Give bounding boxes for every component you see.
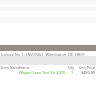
staticText: Qty	[68, 65, 74, 70]
staticText: 1	[69, 70, 75, 75]
staticText: $450.00	[78, 70, 95, 75]
staticText: Item Name	[1, 65, 20, 70]
staticText: Wagon Lane Tool Kit 2000	[19, 70, 65, 75]
staticText: Invoice No 1 : INV07361 Wilmington, DE 1…	[1, 52, 85, 57]
staticText: Unit Price	[78, 65, 95, 70]
staticText: Status	[19, 65, 30, 70]
